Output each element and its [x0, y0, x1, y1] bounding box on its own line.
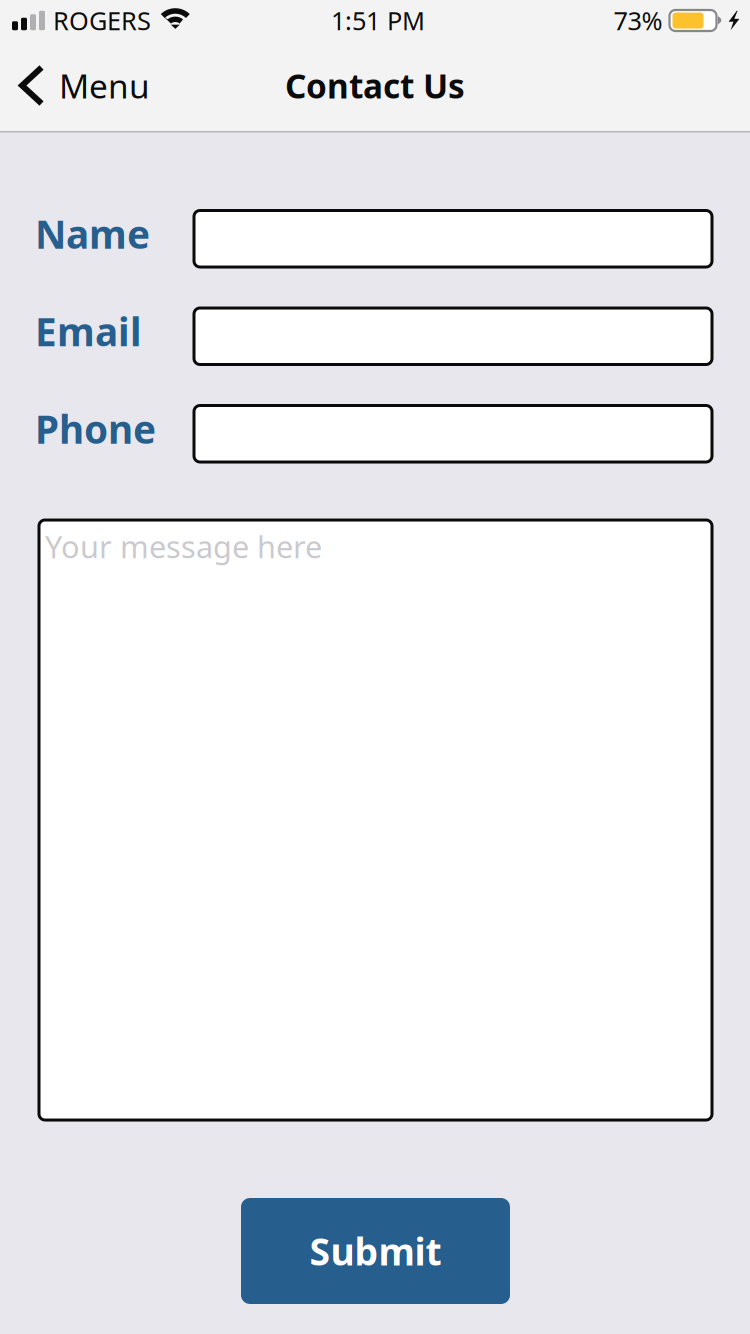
staticText: Contact Us [285, 63, 465, 108]
staticText: 1:51 PM [331, 4, 425, 37]
button[interactable]: Phone [194, 405, 712, 462]
staticText: Email [35, 306, 142, 357]
button[interactable]: Your message here [39, 520, 712, 1120]
staticText: Phone [35, 403, 156, 454]
staticText: 73% [613, 4, 662, 37]
button[interactable]: Email [194, 308, 712, 364]
button[interactable]: Submit [241, 1198, 510, 1304]
button[interactable]: Name [194, 210, 712, 267]
button[interactable]: Menu [0, 44, 162, 131]
staticText: Submit [309, 1226, 441, 1276]
staticText: Name [35, 208, 150, 259]
staticText: Your message here [45, 526, 322, 567]
staticText: Menu [59, 63, 150, 108]
staticText: ROGERS [53, 4, 151, 37]
